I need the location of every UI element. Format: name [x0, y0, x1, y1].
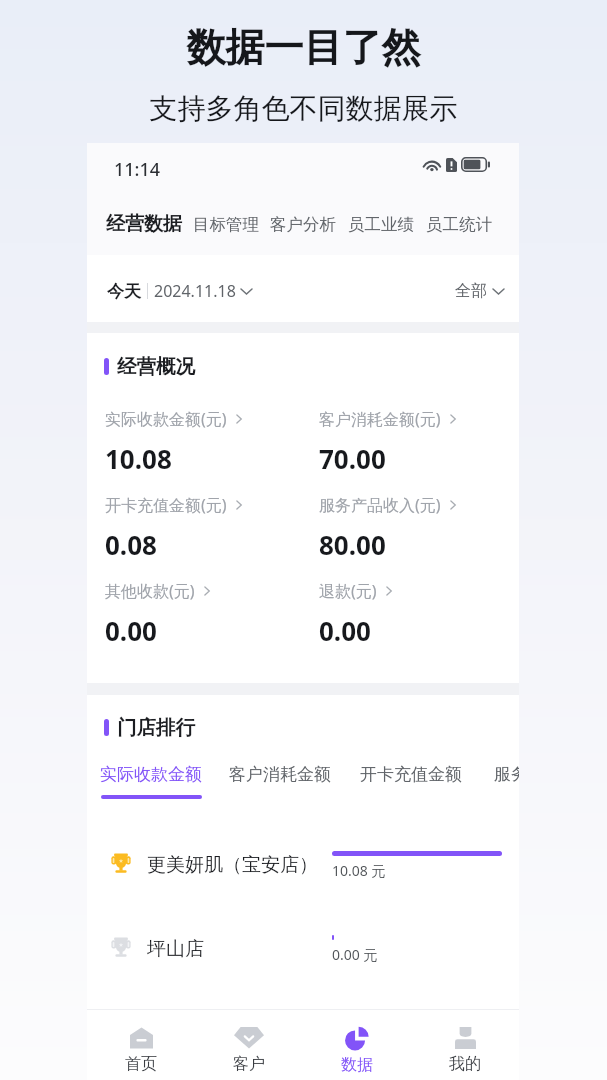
button[interactable]: 客户消耗金额: [229, 764, 331, 785]
button[interactable]: 今天: [107, 280, 252, 302]
staticText: 0.00 元: [332, 945, 378, 964]
button[interactable]: 员工业绩: [348, 214, 414, 235]
staticText: 客户消耗金额(元): [319, 408, 441, 430]
staticText: 数据一目了然: [0, 23, 607, 72]
button[interactable]: 数据: [303, 1015, 411, 1080]
staticText: 全部: [455, 281, 487, 301]
button[interactable]: 我的: [411, 1015, 519, 1080]
button[interactable]: 客户分析: [270, 214, 336, 235]
staticText: 门店排行: [117, 715, 195, 740]
button[interactable]: 服务产品收入(元): [319, 494, 519, 562]
button[interactable]: 员工统计: [426, 214, 492, 235]
staticText: 我的: [449, 1054, 481, 1074]
button[interactable]: 客户: [195, 1015, 303, 1080]
staticText: 首页: [125, 1054, 157, 1074]
staticText: 0.00: [319, 613, 371, 648]
staticText: 坪山店: [147, 937, 204, 961]
staticText: 服务产品收入(元): [319, 494, 441, 516]
staticText: 实际收款金额(元): [105, 408, 227, 430]
button[interactable]: 开卡充值金额(元): [105, 494, 315, 562]
staticText: 客户: [233, 1054, 265, 1074]
staticText: 数据: [341, 1055, 373, 1075]
other: 客户: [234, 1026, 264, 1049]
staticText: 11:14: [114, 157, 161, 182]
staticText: 80.00: [319, 527, 386, 562]
button[interactable]: 坪山店: [87, 929, 519, 989]
staticText: 10.08 元: [332, 861, 386, 880]
staticText: 经营概况: [117, 354, 195, 379]
staticText: 0.08: [105, 527, 157, 562]
staticText: 退款(元): [319, 580, 377, 602]
button[interactable]: 全部: [455, 281, 504, 301]
staticText: 其他收款(元): [105, 580, 195, 602]
button[interactable]: 开卡充值金额: [360, 764, 462, 785]
staticText: 2024.11.18: [154, 280, 236, 302]
button[interactable]: 客户消耗金额(元): [319, 408, 519, 476]
button[interactable]: 首页: [87, 1015, 195, 1080]
staticText: 70.00: [319, 441, 386, 476]
button[interactable]: 更美妍肌（宝安店）: [87, 845, 519, 905]
staticText: 开卡充值金额(元): [105, 494, 227, 516]
staticText: 0.00: [105, 613, 157, 648]
staticText: 更美妍肌（宝安店）: [147, 853, 318, 877]
staticText: 实际收款金额: [100, 764, 202, 785]
button[interactable]: 实际收款金额(元): [105, 408, 315, 476]
other: 首页: [130, 1027, 153, 1049]
button[interactable]: 经营数据: [106, 212, 182, 236]
other: 数据: [344, 1026, 370, 1050]
other: 我的: [455, 1027, 476, 1049]
staticText: 10.08: [105, 441, 172, 476]
staticText: 支持多角色不同数据展示: [0, 91, 607, 126]
button[interactable]: 退款(元): [319, 580, 519, 648]
button[interactable]: 实际收款金额: [100, 764, 202, 799]
staticText: 今天: [107, 281, 141, 302]
button[interactable]: 服务产品金额: [494, 764, 519, 785]
button[interactable]: 目标管理: [193, 214, 259, 235]
button[interactable]: 其他收款(元): [105, 580, 315, 648]
